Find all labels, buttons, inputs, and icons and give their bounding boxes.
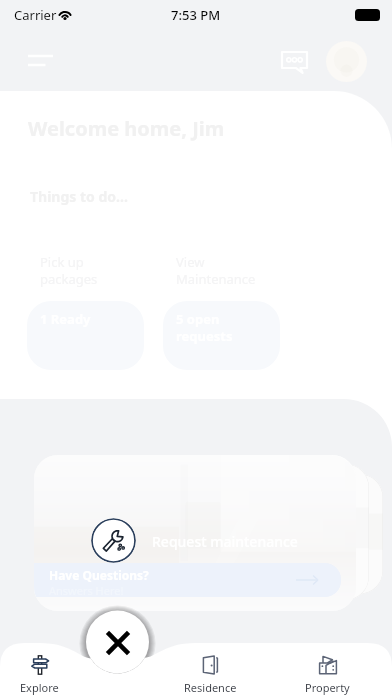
staticText: Property xyxy=(305,680,350,695)
button[interactable]: Have Questions? xyxy=(34,563,341,597)
staticText: Things to do... xyxy=(30,187,128,206)
staticText: 7:53 PM xyxy=(171,6,221,24)
staticText: 5 open requests xyxy=(176,310,233,345)
button[interactable]: Request maintenance xyxy=(91,518,136,563)
staticText: Explore xyxy=(20,680,59,695)
staticText: Residence xyxy=(184,680,237,695)
button[interactable]: View Maintenance xyxy=(162,244,281,372)
staticText: Welcome home, Jim xyxy=(28,115,225,142)
staticText: Request maintenance xyxy=(152,532,298,551)
button[interactable]: Profile xyxy=(326,41,367,82)
button[interactable]: Request maintenance xyxy=(34,455,356,611)
staticText: View Maintenance xyxy=(176,253,256,288)
button[interactable]: Pick up packages xyxy=(26,244,145,372)
staticText: Have Questions? xyxy=(49,567,149,583)
button[interactable]: Close xyxy=(86,611,149,674)
staticText: 1 Ready xyxy=(40,310,91,328)
button[interactable]: Property xyxy=(292,652,363,696)
button[interactable]: Explore xyxy=(4,652,75,696)
button[interactable]: Messages xyxy=(274,43,314,79)
button[interactable]: Residence xyxy=(175,652,246,696)
staticText: Pick up packages xyxy=(40,253,98,288)
staticText: Carrier xyxy=(14,6,57,24)
